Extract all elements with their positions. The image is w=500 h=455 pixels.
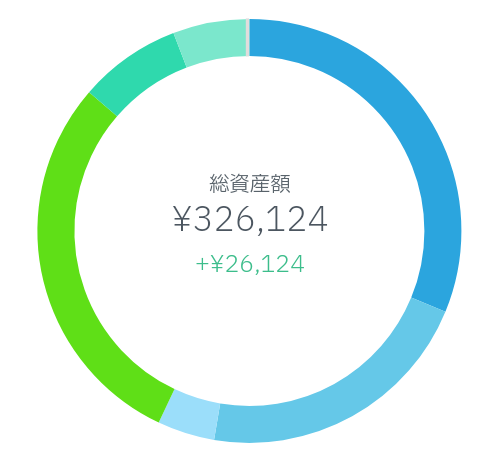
other: Asset allocation donut chart bbox=[0, 0, 500, 455]
button[interactable]: 総資産額 bbox=[0, 0, 500, 455]
staticText: ¥326,124 bbox=[0, 195, 500, 245]
staticText: +¥26,124 bbox=[0, 247, 500, 282]
staticText: 総資産額 bbox=[0, 169, 500, 200]
